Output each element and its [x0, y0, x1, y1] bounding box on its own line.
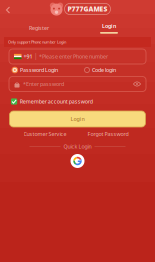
staticText: *Please enter Phone number: [39, 53, 108, 60]
button[interactable]: Sign in with Google: [70, 154, 84, 168]
staticText: +91: [23, 53, 32, 60]
button[interactable]: Back: [0, 1, 17, 19]
staticText: Code login: [92, 66, 116, 74]
button[interactable]: Password Login: [12, 66, 58, 74]
staticText: Register: [29, 24, 49, 32]
button[interactable]: Customer Service: [23, 130, 66, 138]
staticText: Password Login: [20, 66, 58, 74]
button[interactable]: Login: [79, 20, 139, 36]
staticText: Only support Phone number Login: [8, 39, 66, 45]
staticText: Quick Login: [63, 143, 91, 150]
button[interactable]: Forgot Password: [87, 130, 128, 138]
staticText: P777GAMES: [67, 5, 107, 13]
staticText: Remember account password: [20, 98, 93, 105]
button[interactable]: Remember account password: [11, 97, 141, 106]
staticText: Login: [70, 115, 84, 123]
button[interactable]: Show password: [133, 81, 141, 87]
button[interactable]: Code login: [84, 66, 116, 74]
button[interactable]: Register: [9, 21, 69, 35]
staticText: Login: [102, 22, 116, 29]
staticText: Forgot Password: [87, 130, 128, 138]
staticText: *Enter password: [23, 80, 64, 88]
staticText: Customer Service: [23, 130, 66, 138]
button[interactable]: Login: [9, 111, 145, 127]
